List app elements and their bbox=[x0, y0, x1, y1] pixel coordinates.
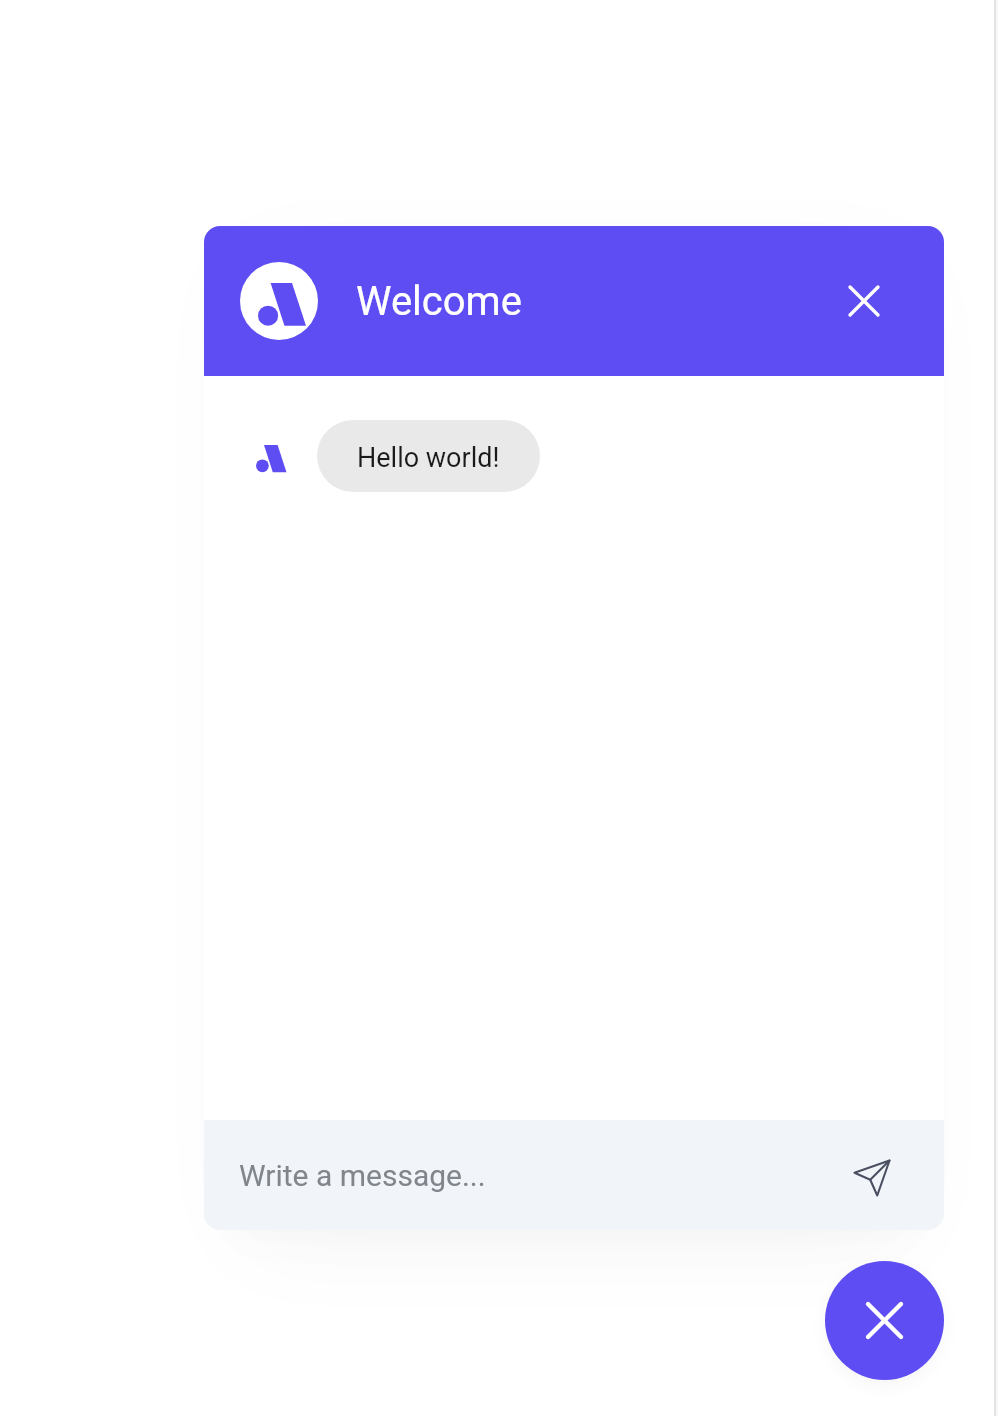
button[interactable]: Close bbox=[836, 273, 892, 329]
button[interactable]: Close chat bbox=[825, 1261, 944, 1380]
staticText: Welcome bbox=[356, 278, 522, 325]
staticText: Write a message... bbox=[239, 1158, 486, 1193]
staticText: Hello world! bbox=[357, 442, 500, 474]
button[interactable]: Send bbox=[846, 1149, 898, 1201]
